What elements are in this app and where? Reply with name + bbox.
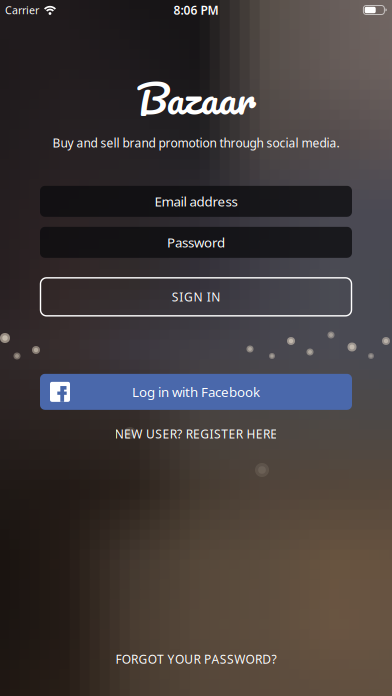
button[interactable]: SIGN IN	[40, 278, 351, 316]
staticText: Email address	[154, 192, 237, 210]
button[interactable]: Password	[40, 227, 352, 258]
staticText: Carrier	[5, 3, 39, 17]
button[interactable]: Email address	[40, 186, 352, 217]
button[interactable]: Log in with Facebook	[40, 374, 352, 410]
staticText: Bazaar	[136, 64, 255, 132]
staticText: NEW USER? REGISTER HERE	[115, 426, 277, 442]
button[interactable]: NEW USER? REGISTER HERE	[115, 426, 277, 442]
staticText: Password	[167, 233, 225, 251]
staticText: SIGN IN	[172, 289, 220, 305]
staticText: Log in with Facebook	[132, 383, 260, 401]
staticText: FORGOT YOUR PASSWORD?	[115, 651, 276, 667]
staticText: 8:06 PM	[173, 2, 218, 18]
staticText: Buy and sell brand promotion through soc…	[52, 135, 339, 151]
button[interactable]: FORGOT YOUR PASSWORD?	[115, 651, 276, 667]
